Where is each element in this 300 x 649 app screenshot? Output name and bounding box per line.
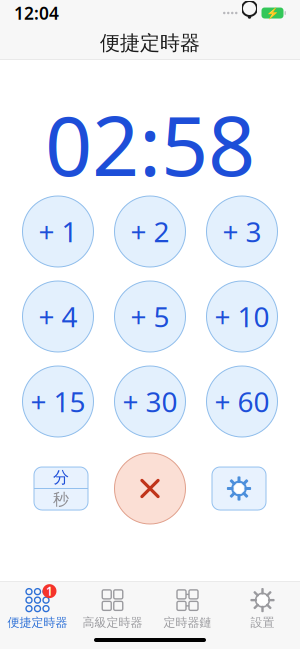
- button[interactable]: + 10: [206, 281, 277, 352]
- staticText: 便捷定時器: [100, 31, 200, 55]
- button[interactable]: + 1: [22, 196, 93, 267]
- button[interactable]: 設置: [225, 586, 300, 632]
- button[interactable]: + 30: [114, 366, 185, 437]
- staticText: + 15: [30, 383, 85, 420]
- staticText: 定時器鏈: [163, 615, 211, 630]
- staticText: + 60: [214, 383, 269, 420]
- button[interactable]: 1: [0, 586, 75, 632]
- staticText: 12:04: [14, 1, 59, 24]
- button[interactable]: 定時器鏈: [150, 586, 225, 632]
- staticText: 分: [53, 468, 69, 487]
- staticText: + 30: [122, 383, 177, 420]
- staticText: + 1: [38, 213, 77, 250]
- button[interactable]: + 5: [114, 281, 185, 352]
- button[interactable]: + 15: [22, 366, 93, 437]
- staticText: + 4: [38, 298, 77, 335]
- staticText: ⚡: [266, 7, 279, 19]
- button[interactable]: Cancel: [114, 453, 185, 524]
- button[interactable]: + 3: [206, 196, 277, 267]
- button[interactable]: + 2: [114, 196, 185, 267]
- staticText: 設置: [250, 615, 274, 630]
- button[interactable]: 分: [34, 467, 88, 510]
- staticText: 1: [46, 583, 53, 599]
- staticText: + 5: [130, 298, 169, 335]
- button[interactable]: + 60: [206, 366, 277, 437]
- button[interactable]: Settings: [212, 467, 266, 510]
- staticText: 便捷定時器: [7, 615, 67, 630]
- button[interactable]: + 4: [22, 281, 93, 352]
- staticText: + 2: [130, 213, 169, 250]
- staticText: + 3: [222, 213, 261, 250]
- staticText: + 10: [214, 298, 269, 335]
- button[interactable]: 高級定時器: [75, 586, 150, 632]
- staticText: 高級定時器: [82, 615, 142, 630]
- staticText: 秒: [53, 490, 69, 509]
- staticText: 02:58: [45, 89, 255, 199]
